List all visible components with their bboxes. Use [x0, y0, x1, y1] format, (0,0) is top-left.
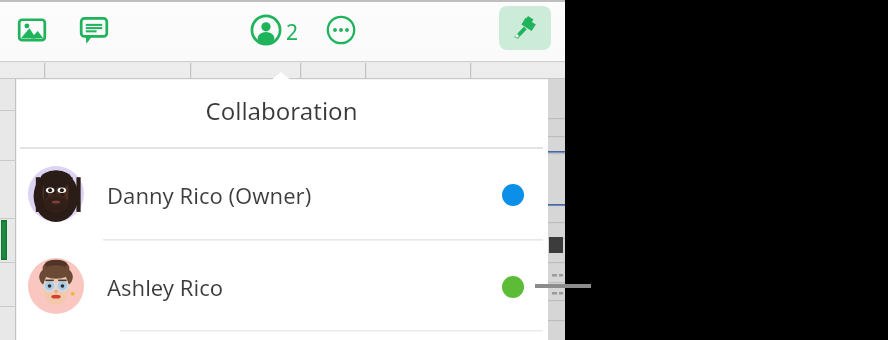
staticText: Danny Rico (Owner) [107, 180, 312, 210]
button[interactable]: Danny Rico (Owner) [20, 148, 543, 240]
button[interactable]: Insert media [8, 8, 56, 52]
button[interactable]: Ashley Rico [20, 240, 543, 332]
button[interactable]: Collaborate, 2 people [248, 8, 312, 52]
staticText: 2 [286, 18, 299, 47]
staticText: Ashley Rico [107, 272, 224, 302]
button[interactable]: More options [318, 8, 364, 52]
button[interactable]: Comment [70, 8, 118, 52]
button[interactable]: Format [499, 6, 551, 50]
staticText: Collaboration [20, 94, 543, 130]
